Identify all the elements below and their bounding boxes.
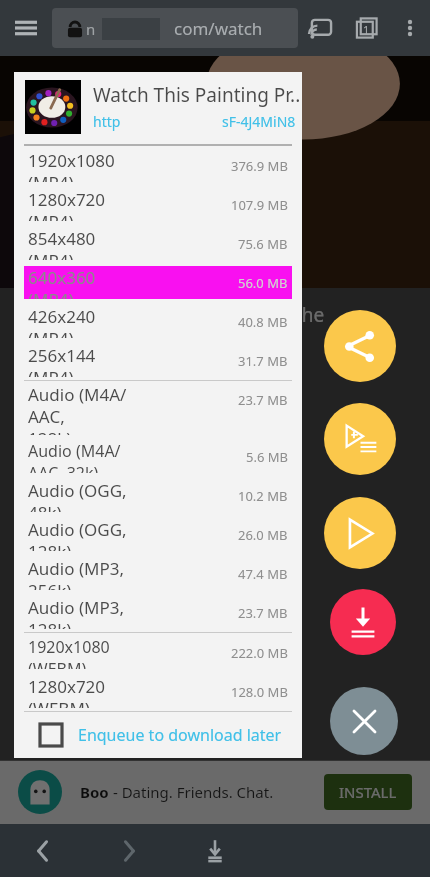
button[interactable]: 854x480 (MP4)	[24, 227, 292, 260]
staticText: 23.7 MB	[238, 604, 288, 622]
staticText: 26.0 MB	[238, 526, 288, 544]
button[interactable]: n	[52, 8, 298, 48]
button[interactable]: Audio (OGG, 128k)	[24, 518, 292, 551]
staticText: http	[93, 112, 121, 131]
button[interactable]: Audio (MP3, 256k)	[24, 557, 292, 590]
staticText: Audio (M4A/AAC, 32k)	[28, 440, 137, 473]
button[interactable]: Close	[330, 687, 398, 755]
staticText: 1280x720 (MP4)	[28, 188, 129, 221]
staticText: sF-4J4MiN8	[222, 112, 296, 131]
button[interactable]: 256x144 (MP4)	[24, 344, 292, 377]
button[interactable]: 1280x720 (MP4)	[24, 188, 292, 221]
button[interactable]: Download	[330, 589, 396, 655]
button[interactable]: More options	[390, 0, 430, 56]
staticText: 107.9 MB	[231, 196, 288, 214]
button[interactable]: INSTALL	[324, 774, 412, 810]
button[interactable]: 1920x1080 (MP4)	[24, 149, 292, 182]
button[interactable]: Enqueue to download later	[14, 712, 302, 758]
button[interactable]: Playlist	[324, 403, 396, 475]
button[interactable]: Downloads	[172, 824, 258, 877]
button[interactable]: Play	[324, 497, 396, 569]
button[interactable]: Save	[14, 465, 214, 511]
staticText: Watch This Painting Pr..	[93, 82, 301, 108]
staticText: Audio (OGG, 48k)	[28, 479, 133, 512]
staticText: 426x240 (MP4)	[28, 305, 133, 338]
staticText: 222.0 MB	[231, 644, 288, 662]
button[interactable]: 1280x720 (WEBM)	[24, 675, 292, 708]
button[interactable]: Menu	[0, 0, 52, 56]
staticText: Watch This Painting Process of The	[14, 302, 325, 328]
staticText: 23.7 MB	[238, 391, 288, 409]
button[interactable]: Tabs	[344, 0, 390, 56]
staticText: Audio (MP3, 128k)	[28, 596, 133, 629]
staticText: Audio (M4A/AAC, 128k)	[28, 383, 133, 435]
button[interactable]: 1920x1080 (WEBM)	[24, 636, 292, 669]
staticText: I want to thank you for watching	[14, 545, 228, 564]
staticText: 56.0 MB	[238, 274, 288, 292]
staticText: n	[86, 19, 96, 39]
staticText: 10.2 MB	[238, 487, 288, 505]
staticText: 376.9 MB	[231, 157, 288, 175]
staticText: 1280x720 (WEBM)	[28, 675, 129, 708]
staticText: 75.6 MB	[238, 235, 288, 253]
staticText: 40.8 MB	[238, 313, 288, 331]
button[interactable]: Cast	[298, 0, 344, 56]
staticText: Audio (MP3, 256k)	[28, 557, 133, 590]
staticText: 256x144 (MP4)	[28, 344, 133, 377]
button[interactable]: Forward	[86, 824, 172, 877]
staticText: Boo	[80, 782, 109, 802]
staticText: 640x360 (MP4)	[28, 266, 133, 299]
button[interactable]: 426x240 (MP4)	[24, 305, 292, 338]
button[interactable]: Share	[324, 310, 396, 382]
button[interactable]: Subscribe	[14, 401, 204, 445]
staticText: 1	[363, 22, 370, 37]
staticText: Save	[62, 478, 95, 498]
button[interactable]: Audio (M4A/AAC, 32k)	[24, 440, 292, 473]
button[interactable]: Audio (MP3, 128k)	[24, 596, 292, 629]
button[interactable]: Audio (OGG, 48k)	[24, 479, 292, 512]
staticText: INSTALL	[339, 782, 397, 802]
staticText: 47.4 MB	[238, 565, 288, 583]
staticText: 1920x1080 (WEBM)	[28, 636, 129, 669]
staticText: com/watch	[174, 17, 263, 40]
staticText: Enqueue to download later	[78, 724, 282, 746]
staticText: 1920x1080 (MP4)	[28, 149, 129, 182]
staticText: 854x480 (MP4)	[28, 227, 133, 260]
staticText: 128.0 MB	[231, 683, 288, 701]
staticText: - Dating. Friends. Chat.	[109, 782, 274, 802]
button[interactable]: 640x360 (MP4)	[24, 266, 292, 299]
staticText: Show more	[14, 368, 89, 387]
staticText: 5.6 MB	[246, 448, 288, 466]
staticText: Audio (OGG, 128k)	[28, 518, 133, 551]
staticText: 31.7 MB	[238, 352, 288, 370]
button[interactable]: Audio (M4A/AAC, 128k)	[24, 383, 292, 435]
button[interactable]: Back	[0, 824, 86, 877]
